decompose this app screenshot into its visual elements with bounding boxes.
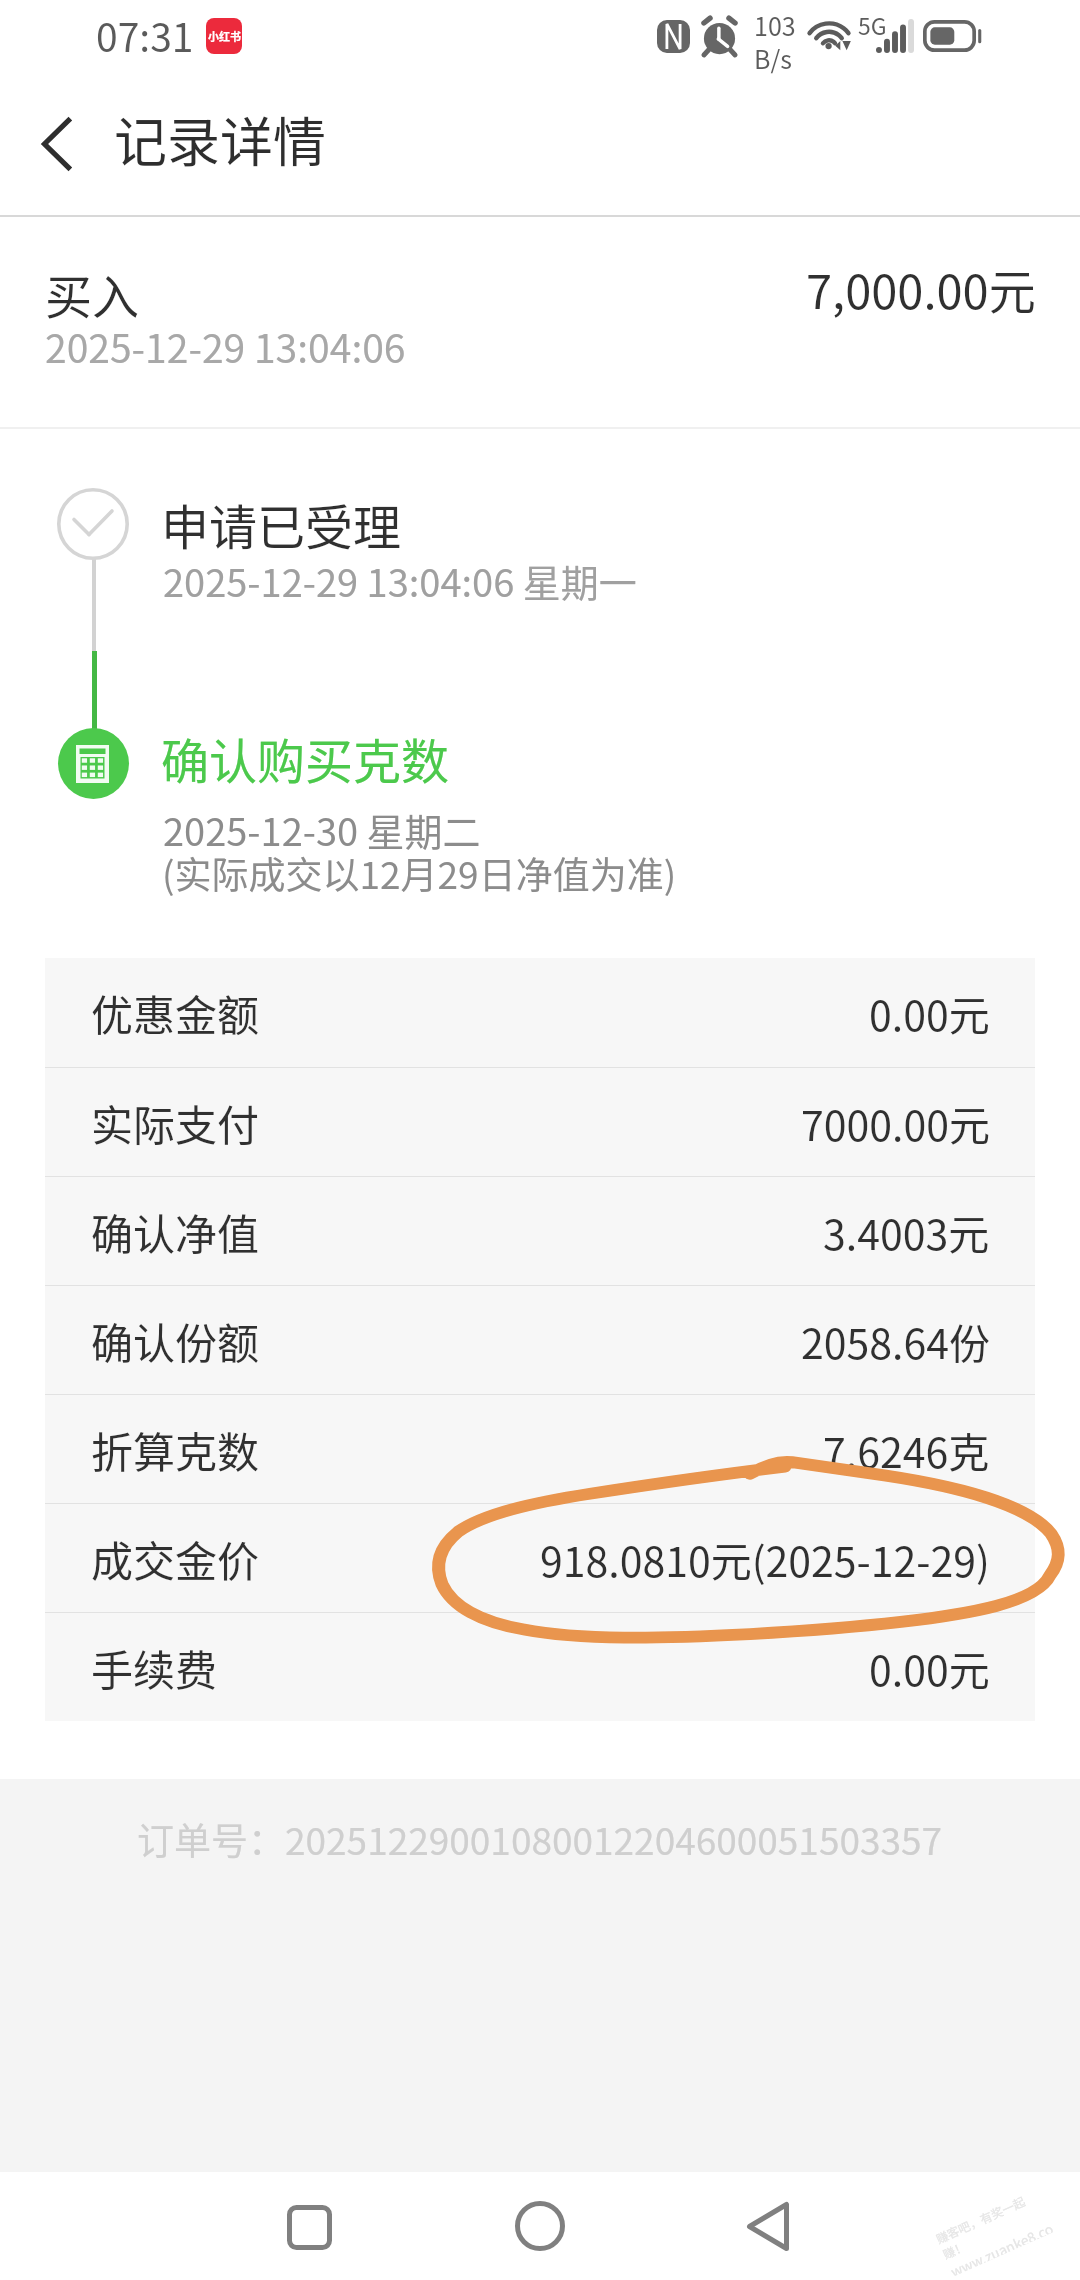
staticText: www.zuanke8.com <box>947 2215 1061 2277</box>
staticText: 5G <box>858 8 887 41</box>
button[interactable]: 手续费 <box>91 1613 990 1721</box>
staticText: 918.0810元(2025-12-29) <box>540 1529 990 1588</box>
staticText: 7,000.00元 <box>806 254 1036 322</box>
staticText: 07:31 <box>96 7 194 63</box>
staticText: 7000.00元 <box>801 1093 990 1152</box>
staticText: B/s <box>754 40 792 76</box>
staticText: 确认份额 <box>91 1310 260 1371</box>
staticText: 记录详情 <box>114 101 326 178</box>
staticText: 2025-12-29 13:04:06 <box>45 318 406 374</box>
staticText: 小红书 <box>208 28 241 44</box>
staticText: (实际成交以12月29日净值为准) <box>162 846 677 900</box>
button[interactable]: 优惠金额 <box>91 958 990 1067</box>
staticText: 确认净值 <box>91 1201 260 1262</box>
staticText: 买入 <box>45 259 139 327</box>
staticText: 0.00元 <box>869 1638 990 1697</box>
staticText: 赚客吧，有奖一起赚！ <box>933 2183 1054 2262</box>
staticText: 103 <box>754 7 796 43</box>
staticText: 确认购买克数 <box>161 723 450 793</box>
staticText: 申请已受理 <box>161 489 402 559</box>
button[interactable]: 确认净值 <box>91 1177 990 1285</box>
button[interactable]: Back <box>723 2181 813 2271</box>
staticText: 折算克数 <box>91 1419 260 1480</box>
staticText: 手续费 <box>91 1637 218 1698</box>
staticText: 7.6246克 <box>823 1420 990 1479</box>
staticText: 2025-12-30 星期二 <box>163 802 481 857</box>
button[interactable]: 成交金价 <box>91 1504 990 1612</box>
staticText: 0.00元 <box>869 983 990 1042</box>
button[interactable]: 确认份额 <box>91 1286 990 1394</box>
staticText: 订单号：20251229001080012204600051503357 <box>137 1812 943 1866</box>
button[interactable]: Back <box>16 106 96 182</box>
staticText: 成交金价 <box>91 1528 260 1589</box>
staticText: 2025-12-29 13:04:06 星期一 <box>163 553 637 608</box>
staticText: 优惠金额 <box>91 982 260 1043</box>
staticText: 2058.64份 <box>801 1311 990 1370</box>
staticText: 3.4003元 <box>823 1202 990 1261</box>
button[interactable]: 折算克数 <box>91 1395 990 1503</box>
button[interactable]: Recent apps <box>264 2182 354 2272</box>
button[interactable]: 实际支付 <box>91 1068 990 1176</box>
button[interactable]: Home <box>495 2181 585 2271</box>
staticText: 实际支付 <box>91 1092 260 1153</box>
